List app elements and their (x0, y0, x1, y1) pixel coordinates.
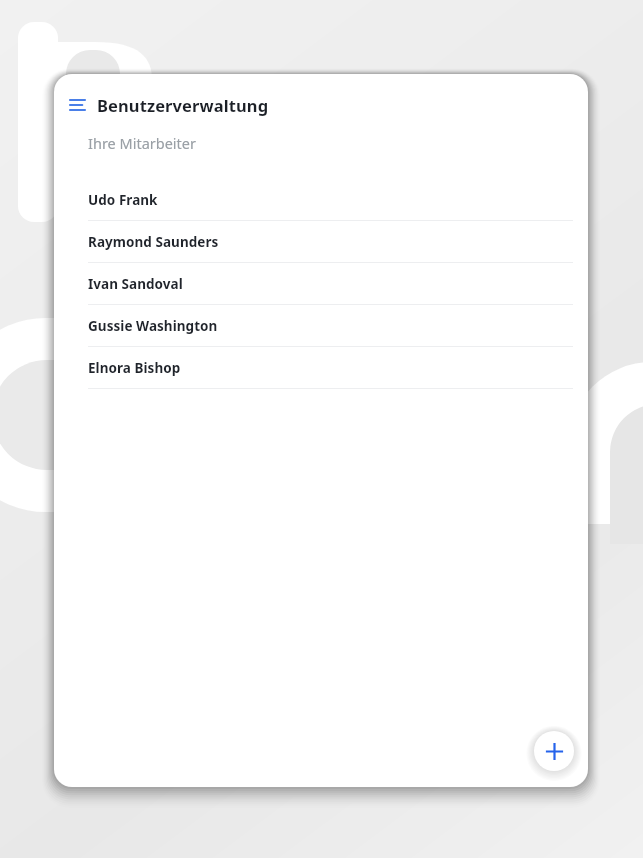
button[interactable]: Elnora Bishop (54, 347, 588, 389)
button[interactable]: Ivan Sandoval (54, 263, 588, 305)
button[interactable]: Udo Frank (54, 179, 588, 221)
staticText: Gussie Washington (88, 317, 218, 335)
button[interactable]: Mitarbeiter hinzufügen (532, 729, 576, 773)
staticText: Elnora Bishop (88, 359, 181, 377)
button[interactable]: Menü (60, 88, 94, 122)
button[interactable]: Gussie Washington (54, 305, 588, 347)
staticText: Raymond Saunders (88, 233, 219, 251)
staticText: Benutzerverwaltung (97, 94, 269, 116)
staticText: Udo Frank (88, 191, 158, 209)
staticText: Ihre Mitarbeiter (88, 133, 197, 153)
button[interactable]: Raymond Saunders (54, 221, 588, 263)
staticText: Ivan Sandoval (88, 275, 183, 293)
